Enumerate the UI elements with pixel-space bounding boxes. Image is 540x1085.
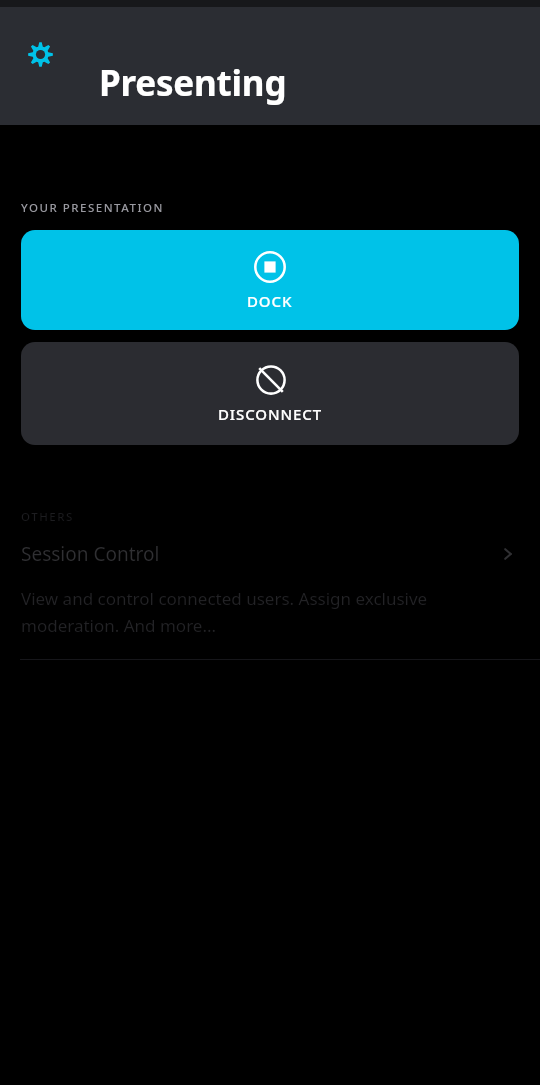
staticText: YOUR PRESENTATION	[21, 200, 164, 216]
staticText: Presenting	[99, 59, 287, 107]
button[interactable]: Session Control	[0, 541, 540, 660]
staticText: DISCONNECT	[218, 404, 323, 424]
staticText: View and control connected users. Assign…	[21, 587, 490, 637]
button[interactable]: Settings	[17, 31, 63, 77]
staticText: Session Control	[21, 541, 160, 567]
staticText: OTHERS	[21, 509, 74, 525]
staticText: DOCK	[247, 291, 293, 311]
button[interactable]: DOCK	[21, 230, 519, 330]
button[interactable]: DISCONNECT	[21, 342, 519, 445]
